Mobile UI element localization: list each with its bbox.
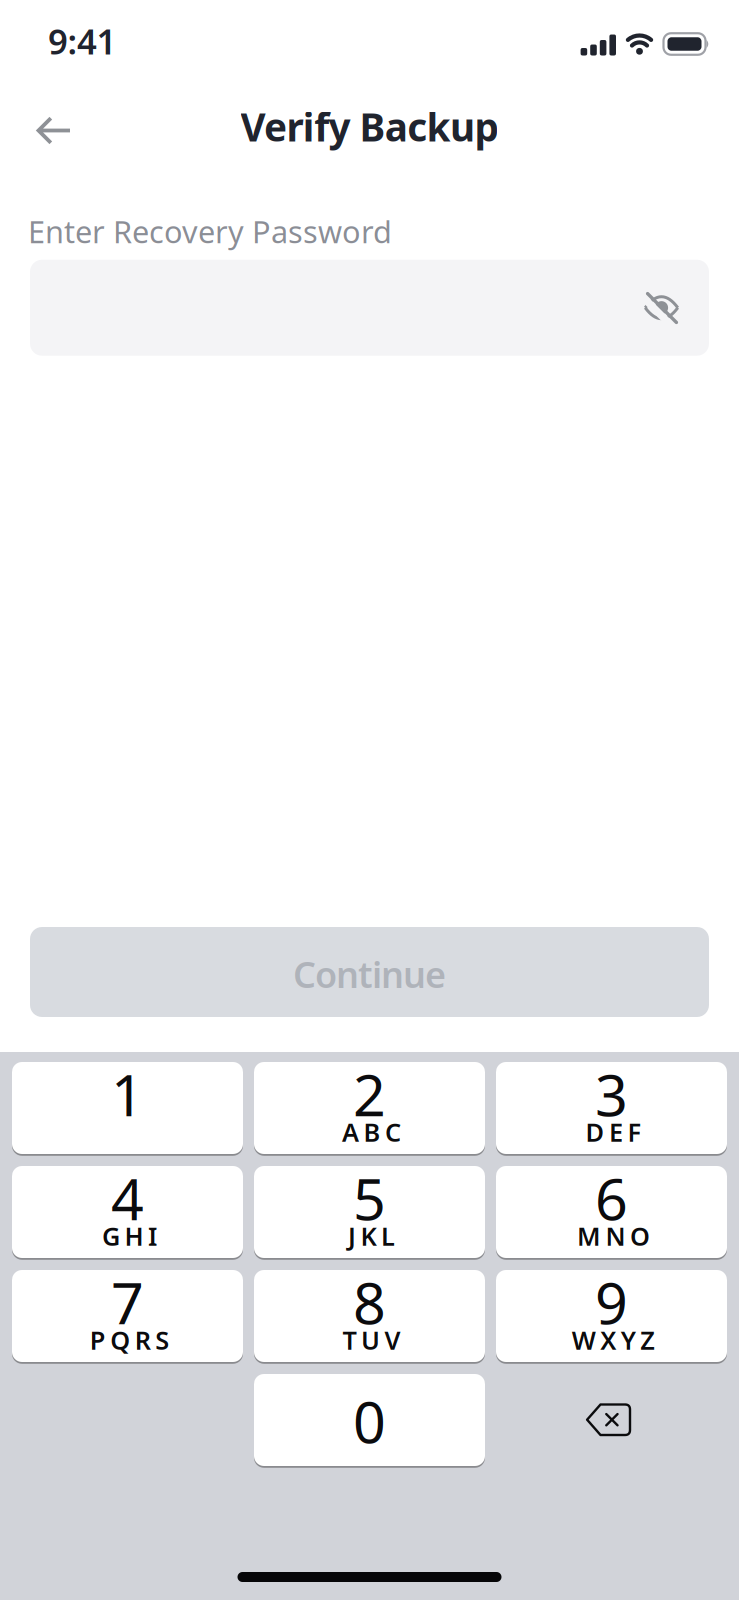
button[interactable]: Delete: [496, 1374, 727, 1466]
button[interactable]: 3: [496, 1062, 727, 1154]
button[interactable]: 2: [254, 1062, 485, 1154]
staticText: 9: [595, 1264, 628, 1340]
staticText: 4: [111, 1160, 144, 1236]
staticText: 3: [595, 1056, 628, 1132]
button[interactable]: 9: [496, 1270, 727, 1362]
staticText: TUV: [342, 1323, 400, 1357]
staticText: 5: [353, 1160, 386, 1236]
button[interactable]: Continue: [30, 927, 709, 1017]
button[interactable]: Recovery password, show or hide: [30, 260, 709, 356]
button[interactable]: 4: [12, 1166, 243, 1258]
staticText: GHI: [102, 1219, 157, 1253]
button[interactable]: 0: [254, 1374, 485, 1466]
staticText: 1: [111, 1056, 144, 1132]
staticText: WXYZ: [572, 1323, 655, 1357]
staticText: Continue: [293, 950, 446, 998]
staticText: PQRS: [90, 1323, 169, 1357]
staticText: 9:41: [48, 18, 116, 64]
staticText: Verify Backup: [241, 101, 498, 152]
staticText: MNO: [577, 1219, 650, 1253]
staticText: 8: [353, 1264, 386, 1340]
button[interactable]: 1: [12, 1062, 243, 1154]
button[interactable]: 6: [496, 1166, 727, 1258]
staticText: 0: [353, 1383, 386, 1459]
staticText: Enter Recovery Password: [28, 211, 392, 252]
staticText: 7: [111, 1264, 144, 1340]
button[interactable]: 7: [12, 1270, 243, 1362]
staticText: DEF: [585, 1115, 641, 1149]
staticText: 2: [353, 1056, 386, 1132]
button[interactable]: 5: [254, 1166, 485, 1258]
button[interactable]: 8: [254, 1270, 485, 1362]
button[interactable]: Back: [0, 97, 71, 164]
staticText: ABC: [342, 1115, 401, 1149]
staticText: 6: [595, 1160, 628, 1236]
staticText: JKL: [348, 1219, 395, 1253]
